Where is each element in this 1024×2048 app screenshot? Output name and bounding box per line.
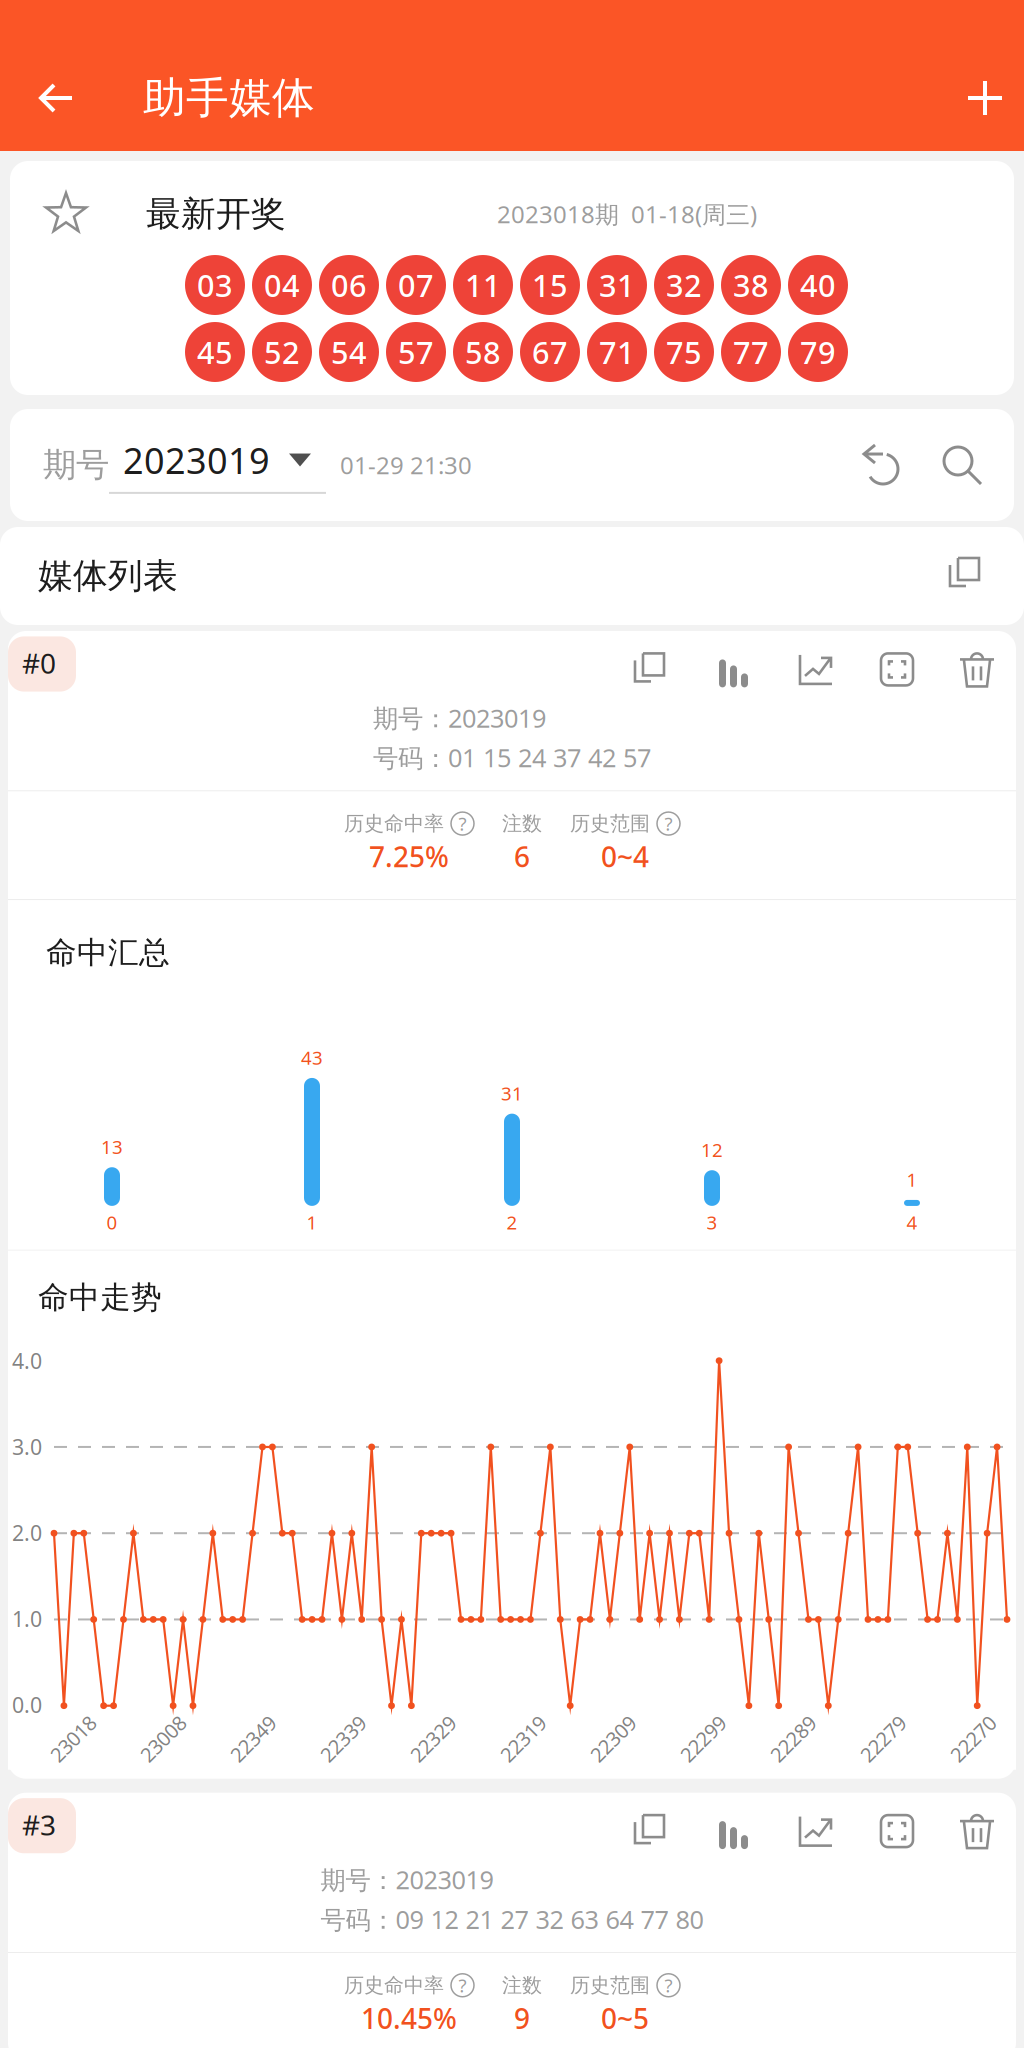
button[interactable]: 全屏 — [857, 1812, 937, 1850]
staticText: 1.0 — [12, 1604, 42, 1633]
staticText: 40 — [800, 265, 836, 305]
staticText: 2.0 — [12, 1518, 42, 1547]
staticText: 57 — [398, 332, 434, 372]
button[interactable]: 全屏 — [857, 650, 937, 688]
staticText: 0 — [106, 1210, 117, 1235]
staticText: 22289 — [765, 1725, 820, 1752]
staticText: 38 — [733, 265, 769, 305]
staticText: 2 — [506, 1210, 517, 1235]
staticText: 3 — [706, 1210, 717, 1235]
staticText: 22299 — [675, 1725, 730, 1752]
staticText: 67 — [532, 332, 568, 372]
staticText: 历史命中率 — [344, 811, 444, 836]
staticText: 号码：09 12 21 27 32 63 64 77 80 — [320, 1902, 703, 1936]
staticText: 23008 — [135, 1725, 190, 1752]
staticText: 07 — [398, 265, 434, 305]
staticText: 54 — [331, 332, 367, 372]
staticText: 22319 — [495, 1725, 550, 1752]
staticText: 3.0 — [12, 1432, 42, 1461]
staticText: 06 — [331, 265, 367, 305]
staticText: ? — [458, 811, 466, 836]
staticText: ? — [664, 1973, 672, 1998]
staticText: 2023018期 01-18(周三) — [497, 198, 757, 230]
button[interactable]: 返回 — [0, 59, 143, 137]
staticText: 期号：2023019 — [320, 1863, 493, 1896]
staticText: 注数 — [502, 811, 542, 836]
staticText: 22270 — [945, 1725, 1000, 1752]
button[interactable]: 柱状图 — [692, 1813, 775, 1849]
staticText: 0~4 — [601, 838, 649, 875]
button[interactable]: 走势图 — [775, 651, 857, 688]
staticText: 最新开奖 — [146, 193, 286, 235]
staticText: 4.0 — [12, 1346, 42, 1375]
staticText: 12 — [701, 1137, 723, 1162]
staticText: 22349 — [225, 1725, 280, 1752]
staticText: 期号：2023019 — [373, 701, 546, 735]
staticText: 77 — [733, 332, 769, 372]
staticText: 4 — [906, 1210, 917, 1235]
staticText: 22309 — [585, 1725, 640, 1752]
staticText: ? — [664, 811, 672, 836]
staticText: 22329 — [405, 1725, 460, 1752]
staticText: ? — [458, 1973, 466, 1998]
staticText: 命中走势 — [38, 1279, 162, 1316]
staticText: 79 — [800, 332, 836, 372]
staticText: 历史命中率 — [344, 1973, 444, 1998]
staticText: 22279 — [855, 1725, 910, 1752]
staticText: 号码：01 15 24 37 42 57 — [373, 741, 651, 774]
staticText: 22339 — [315, 1725, 370, 1752]
staticText: 注数 — [502, 1973, 542, 1998]
staticText: 9 — [514, 1999, 530, 2037]
staticText: 媒体列表 — [38, 555, 178, 597]
staticText: 期号 — [43, 444, 109, 485]
button[interactable]: 删除 — [937, 1810, 1017, 1852]
staticText: 助手媒体 — [143, 72, 315, 124]
staticText: 01-29 21:30 — [340, 449, 472, 481]
button[interactable]: 复制列表 — [946, 554, 1024, 598]
button[interactable]: 走势图 — [775, 1813, 857, 1850]
button[interactable]: 柱状图 — [692, 651, 775, 687]
staticText: 1 — [306, 1210, 317, 1235]
staticText: 10.45% — [361, 1999, 457, 2037]
staticText: #0 — [22, 644, 56, 682]
staticText: 32 — [666, 265, 702, 305]
button[interactable]: 复制 — [610, 1811, 692, 1851]
staticText: 0.0 — [12, 1690, 42, 1719]
button[interactable]: 复制 — [610, 649, 692, 689]
staticText: 0~5 — [601, 1999, 649, 2037]
staticText: 45 — [197, 332, 233, 372]
staticText: 11 — [465, 265, 501, 305]
staticText: 58 — [465, 332, 501, 372]
staticText: 52 — [264, 332, 300, 372]
staticText: 13 — [101, 1134, 123, 1159]
staticText: 75 — [666, 332, 702, 372]
staticText: 2023019 — [123, 436, 270, 484]
button[interactable]: 收藏 — [10, 191, 89, 237]
staticText: 31 — [599, 265, 635, 305]
staticText: 31 — [501, 1081, 523, 1106]
staticText: #3 — [22, 1806, 56, 1843]
button[interactable]: 搜索 — [904, 443, 1014, 487]
staticText: 15 — [532, 265, 568, 305]
staticText: 43 — [301, 1045, 323, 1070]
staticText: 历史范围 — [570, 1973, 650, 1998]
staticText: 23018 — [45, 1725, 100, 1752]
staticText: 历史范围 — [570, 811, 650, 836]
button[interactable]: 删除 — [937, 648, 1017, 690]
staticText: 03 — [197, 265, 233, 305]
staticText: 1 — [906, 1167, 917, 1192]
button[interactable]: 2023019 — [109, 436, 326, 494]
staticText: 6 — [514, 838, 530, 875]
staticText: 04 — [264, 265, 300, 305]
staticText: 7.25% — [369, 838, 449, 875]
staticText: 命中汇总 — [46, 934, 170, 972]
button[interactable]: 刷新 — [858, 442, 904, 488]
button[interactable]: 添加 — [966, 57, 1024, 139]
staticText: 71 — [599, 332, 635, 372]
